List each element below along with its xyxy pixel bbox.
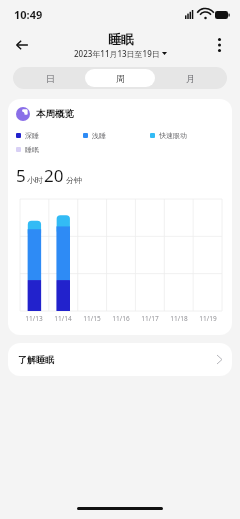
button[interactable]: Back <box>8 31 36 59</box>
staticText: 快速眼动 <box>159 131 187 140</box>
button[interactable]: More options <box>206 32 232 58</box>
staticText: 睡眠 <box>25 145 39 154</box>
button[interactable]: 睡眠 <box>74 31 167 59</box>
staticText: 11/14 <box>54 314 72 323</box>
staticText: 了解睡眠 <box>18 354 54 365</box>
staticText: 11/17 <box>141 314 159 323</box>
staticText: 浅睡 <box>92 131 106 140</box>
staticText: 20 <box>44 164 64 187</box>
staticText: 11/16 <box>112 314 130 323</box>
button[interactable]: 月 <box>155 69 225 87</box>
button[interactable]: 了解睡眠 <box>8 343 232 376</box>
button[interactable]: 日 <box>15 69 85 87</box>
staticText: 分钟 <box>66 175 82 185</box>
staticText: 周 <box>116 73 125 84</box>
staticText: 2023年11月13日至19日 <box>74 48 160 59</box>
staticText: 5 <box>16 164 26 187</box>
staticText: 深睡 <box>25 131 39 140</box>
staticText: 11/15 <box>83 314 101 323</box>
staticText: 11/13 <box>25 314 43 323</box>
staticText: 日 <box>46 73 55 84</box>
staticText: 本周概览 <box>36 108 74 120</box>
button[interactable]: 周 <box>85 69 155 87</box>
staticText: 11/19 <box>199 314 217 323</box>
staticText: 10:49 <box>14 7 43 22</box>
staticText: 睡眠 <box>108 31 134 47</box>
staticText: 小时 <box>27 175 43 185</box>
staticText: 月 <box>186 73 195 84</box>
staticText: 11/18 <box>170 314 188 323</box>
